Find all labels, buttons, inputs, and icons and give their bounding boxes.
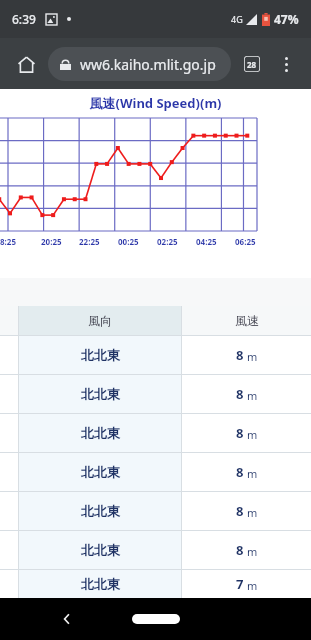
staticText: 風速(Wind Speed)(m) bbox=[0, 94, 311, 112]
staticText: 20:25 bbox=[41, 236, 62, 247]
staticText: 28 bbox=[247, 59, 257, 70]
button[interactable]: 北北東 bbox=[0, 453, 311, 491]
staticText: 06:25 bbox=[235, 236, 256, 247]
button[interactable]: Home bbox=[8, 46, 44, 82]
staticText: 北北東 bbox=[81, 386, 120, 402]
staticText: m bbox=[247, 578, 258, 593]
staticText: 8 bbox=[236, 541, 244, 559]
staticText: m bbox=[247, 466, 258, 481]
button[interactable]: 北北東 bbox=[0, 414, 311, 452]
staticText: 8 bbox=[236, 463, 244, 481]
button[interactable]: Tabs bbox=[235, 47, 269, 81]
staticText: 02:25 bbox=[157, 236, 178, 247]
staticText: 00:25 bbox=[118, 236, 139, 247]
staticText: m bbox=[247, 544, 258, 559]
staticText: 8:25 bbox=[0, 236, 16, 247]
staticText: 04:25 bbox=[196, 236, 217, 247]
staticText: 4G bbox=[231, 13, 243, 25]
staticText: 8 bbox=[236, 385, 244, 403]
staticText: 22:25 bbox=[79, 236, 100, 247]
staticText: 47% bbox=[274, 11, 299, 27]
staticText: 北北東 bbox=[81, 425, 120, 441]
staticText: 8 bbox=[236, 502, 244, 520]
staticText: 風速 bbox=[235, 313, 259, 328]
staticText: 北北東 bbox=[81, 464, 120, 480]
staticText: 北北東 bbox=[81, 503, 120, 519]
staticText: m bbox=[247, 427, 258, 442]
staticText: 北北東 bbox=[81, 347, 120, 363]
button[interactable]: 北北東 bbox=[0, 492, 311, 530]
button[interactable]: 北北東 bbox=[0, 570, 311, 598]
staticText: 8 bbox=[236, 346, 244, 364]
staticText: m bbox=[247, 505, 258, 520]
staticText: 8 bbox=[236, 424, 244, 442]
staticText: m bbox=[247, 349, 258, 364]
staticText: m bbox=[247, 388, 258, 403]
staticText: 北北東 bbox=[81, 542, 120, 558]
button[interactable]: Home gesture bbox=[132, 614, 180, 624]
staticText: 6:39 bbox=[12, 11, 36, 27]
staticText: 北北東 bbox=[81, 576, 120, 592]
button[interactable]: 北北東 bbox=[0, 336, 311, 374]
button[interactable]: 北北東 bbox=[0, 531, 311, 569]
staticText: ww6.kaiho.mlit.go.jp bbox=[80, 55, 216, 74]
staticText: 7 bbox=[236, 575, 244, 593]
button[interactable]: 北北東 bbox=[0, 375, 311, 413]
button[interactable]: ww6.kaiho.mlit.go.jp bbox=[48, 47, 231, 81]
button[interactable]: More options bbox=[269, 47, 303, 81]
button[interactable]: Back bbox=[52, 604, 82, 634]
staticText: 風向 bbox=[88, 313, 112, 328]
